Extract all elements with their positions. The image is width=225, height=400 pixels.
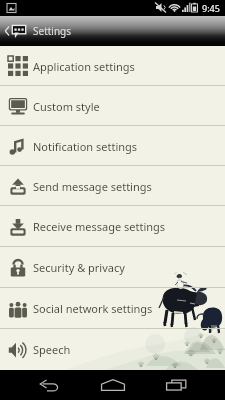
- button[interactable]: Back: [26, 370, 72, 400]
- button[interactable]: Send message settings: [0, 166, 225, 206]
- button[interactable]: Notification settings: [0, 126, 225, 166]
- button[interactable]: Receive message settings: [0, 206, 225, 247]
- staticText: Notification settings: [33, 139, 138, 154]
- button[interactable]: Security & privacy: [0, 247, 225, 288]
- staticText: Security & privacy: [33, 260, 125, 275]
- staticText: Speech: [33, 342, 71, 357]
- button[interactable]: Back: [0, 24, 30, 38]
- staticText: Custom style: [33, 99, 100, 114]
- staticText: Receive message settings: [33, 219, 166, 234]
- button[interactable]: Application settings: [0, 46, 225, 86]
- staticText: Send message settings: [33, 179, 152, 194]
- button[interactable]: Social network settings: [0, 288, 225, 329]
- staticText: Social network settings: [33, 301, 153, 316]
- other: Back: [4, 24, 10, 38]
- button[interactable]: Home: [90, 370, 136, 400]
- button[interactable]: Speech: [0, 329, 225, 370]
- staticText: Settings: [33, 24, 72, 38]
- staticText: Application settings: [33, 59, 135, 74]
- staticText: 9:45: [202, 2, 220, 14]
- button[interactable]: Recent apps: [154, 370, 200, 400]
- button[interactable]: Custom style: [0, 86, 225, 126]
